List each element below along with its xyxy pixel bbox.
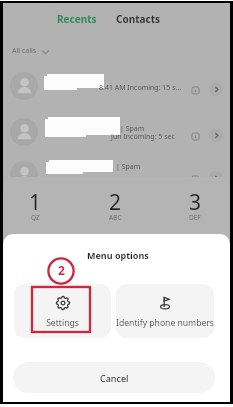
staticText: DEF bbox=[189, 213, 201, 222]
staticText: | Spam bbox=[120, 124, 145, 134]
staticText: 1 bbox=[29, 188, 42, 217]
staticText: 3 bbox=[189, 188, 202, 217]
button[interactable]: Open call bbox=[209, 82, 223, 96]
staticText: Contacts bbox=[116, 12, 161, 26]
button[interactable]: 1 bbox=[3, 188, 75, 226]
staticText: Identify phone numbers bbox=[116, 317, 214, 329]
staticText: 2 bbox=[109, 188, 122, 217]
button[interactable]: Cancel bbox=[13, 362, 215, 393]
staticText: Menu options bbox=[87, 249, 149, 261]
staticText: All calls bbox=[12, 46, 37, 56]
button[interactable]: Settings bbox=[14, 284, 111, 338]
button[interactable]: Identify phone numbers bbox=[116, 284, 214, 338]
button[interactable]: | Spam bbox=[3, 114, 230, 158]
button[interactable]: Call details bbox=[192, 133, 199, 140]
button[interactable]: Call details bbox=[192, 176, 199, 183]
staticText: Jun Incoming: 5 sec bbox=[111, 132, 175, 142]
staticText: Cancel bbox=[100, 372, 129, 384]
button[interactable]: | Spam bbox=[3, 157, 230, 201]
staticText: | Spam bbox=[116, 162, 141, 172]
button[interactable]: 2 bbox=[75, 188, 155, 226]
button[interactable]: 3 bbox=[155, 188, 230, 226]
button[interactable]: 8:41 AM Incoming: 15 s... bbox=[3, 68, 230, 112]
button[interactable]: All calls bbox=[9, 43, 53, 59]
staticText: ABC bbox=[109, 213, 122, 222]
button[interactable]: Open call bbox=[209, 128, 223, 142]
staticText: Recents bbox=[57, 12, 97, 26]
staticText: 8:41 AM Incoming: 15 s... bbox=[99, 83, 182, 93]
button[interactable]: Open call bbox=[209, 171, 223, 185]
button[interactable]: Contacts bbox=[110, 8, 167, 30]
staticText: Settings bbox=[46, 317, 79, 329]
button[interactable]: Recents bbox=[51, 8, 103, 30]
staticText: 2 bbox=[58, 262, 65, 278]
staticText: QZ bbox=[31, 213, 40, 222]
button[interactable]: Call details bbox=[192, 87, 199, 94]
